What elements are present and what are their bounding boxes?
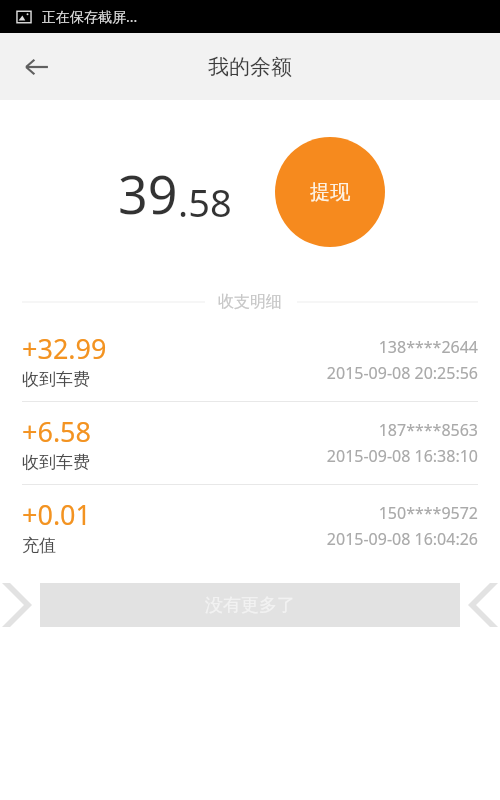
staticText: 我的余额 — [208, 54, 292, 80]
staticText: .58 — [178, 176, 232, 228]
staticText: 2015-09-08 16:38:10 — [326, 445, 478, 467]
button[interactable]: +6.58 — [0, 402, 500, 485]
button[interactable]: +0.01 — [0, 485, 500, 567]
staticText: +0.01 — [22, 496, 92, 533]
staticText: 39 — [118, 158, 178, 229]
staticText: 提现 — [310, 180, 350, 205]
staticText: 138****2644 — [378, 336, 478, 358]
staticText: +6.58 — [22, 413, 92, 450]
button[interactable]: Back — [12, 42, 62, 92]
staticText: 收到车费 — [22, 452, 90, 473]
staticText: 2015-09-08 20:25:56 — [326, 362, 478, 384]
staticText: 收到车费 — [22, 369, 90, 390]
button[interactable]: +32.99 — [0, 319, 500, 402]
staticText: 收支明细 — [218, 292, 282, 312]
staticText: 187****8563 — [378, 419, 478, 441]
staticText: 没有更多了 — [205, 594, 295, 617]
staticText: +32.99 — [22, 330, 107, 367]
staticText: 充值 — [22, 535, 56, 556]
staticText: 2015-09-08 16:04:26 — [326, 528, 478, 550]
staticText: 正在保存截屏... — [42, 7, 138, 26]
button[interactable]: 提现 — [275, 137, 385, 247]
staticText: 150****9572 — [378, 502, 478, 524]
